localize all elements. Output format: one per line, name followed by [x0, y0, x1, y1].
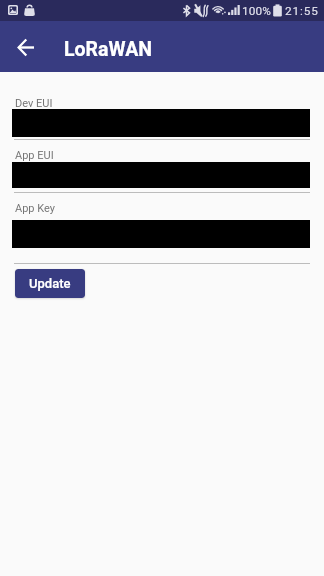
- button[interactable]: App EUI: [14, 149, 310, 194]
- staticText: App Key: [15, 202, 55, 215]
- staticText: 100%: [242, 4, 271, 18]
- staticText: LoRaWAN: [64, 38, 153, 61]
- staticText: App EUI: [15, 149, 54, 162]
- staticText: Update: [29, 276, 71, 291]
- button[interactable]: App Key: [14, 202, 310, 264]
- staticText: Dev EUI: [15, 97, 53, 110]
- button[interactable]: Dev EUI: [14, 97, 310, 141]
- button[interactable]: Back: [9, 31, 42, 64]
- staticText: 21:55: [285, 4, 319, 18]
- button[interactable]: Update: [15, 269, 85, 298]
